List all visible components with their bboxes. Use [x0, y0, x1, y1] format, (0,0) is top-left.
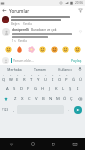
button[interactable]: Geri — [0, 6, 9, 15]
button[interactable]: Ş — [67, 84, 74, 94]
button[interactable]: C — [26, 94, 33, 104]
staticText: Kullanıcı — [58, 67, 72, 72]
staticText: Q — [2, 77, 6, 83]
button[interactable]: F — [25, 84, 32, 94]
button[interactable]: L — [60, 84, 67, 94]
button[interactable]: 1 — [1, 73, 7, 84]
button[interactable]: Paylaş — [70, 57, 83, 64]
button[interactable]: Sesle yaz — [77, 65, 83, 73]
button[interactable]: G — [32, 84, 39, 94]
button[interactable]: Kullanıcı — [52, 65, 77, 73]
staticText: V — [35, 96, 38, 102]
button[interactable]: 8 — [49, 73, 56, 84]
button[interactable]: Geri — [0, 138, 22, 150]
button[interactable]: Ö — [61, 94, 68, 104]
button[interactable]: Emoji 2 — [27, 45, 36, 54]
button[interactable]: H — [39, 84, 46, 94]
button[interactable]: Ğ — [70, 73, 77, 84]
button[interactable]: Gönder — [71, 105, 84, 114]
button[interactable]: Son uygulamalar — [43, 138, 64, 150]
staticText: 8 — [52, 74, 54, 77]
staticText: 9 — [59, 74, 61, 77]
staticText: O — [58, 77, 62, 83]
button[interactable]: B — [40, 94, 47, 104]
staticText: 4 — [24, 74, 26, 77]
button[interactable]: Emoji 3 — [38, 45, 47, 54]
button[interactable]: Ç — [68, 94, 75, 104]
staticText: 6 — [38, 74, 40, 77]
button[interactable]: Merhaba — [2, 65, 27, 73]
staticText: . — [68, 107, 69, 112]
button[interactable]: Shift — [1, 94, 11, 104]
button[interactable]: Virgül — [10, 105, 16, 114]
button[interactable]: Filtrele — [76, 6, 85, 15]
button[interactable]: Beğen — [0, 15, 85, 27]
staticText: Yanıtla — [18, 39, 27, 43]
button[interactable]: Emoji 1 — [15, 45, 24, 54]
staticText: Z — [14, 96, 17, 102]
button[interactable]: Klavyeyi kapat — [64, 138, 85, 150]
button[interactable]: 3 — [14, 73, 21, 84]
button[interactable]: Emoji 4 — [50, 45, 59, 54]
staticText: Ü — [79, 77, 83, 83]
button[interactable]: 0 — [63, 73, 70, 84]
staticText: Paylaş — [71, 58, 82, 63]
staticText: H — [41, 86, 45, 92]
staticText: 20:56 — [75, 1, 84, 5]
staticText: Ş — [69, 86, 72, 92]
staticText: G — [34, 86, 38, 92]
staticText: Ğ — [72, 77, 76, 83]
staticText: R — [23, 77, 26, 83]
button[interactable]: S — [11, 84, 18, 94]
button[interactable]: Sil — [75, 94, 84, 104]
button[interactable]: V — [33, 94, 40, 104]
staticText: D — [20, 86, 24, 92]
staticText: M — [56, 96, 60, 102]
button[interactable]: Emoji 5 — [61, 45, 70, 54]
staticText: K — [55, 86, 58, 92]
button[interactable]: Z — [11, 94, 19, 104]
staticText: Ö — [63, 96, 67, 102]
staticText: P — [65, 77, 68, 83]
button[interactable]: Emoji 0 — [4, 45, 13, 54]
button[interactable]: 9 — [56, 73, 63, 84]
staticText: B — [42, 96, 45, 102]
staticText: dostperelli — [12, 28, 30, 32]
staticText: ?123 — [2, 108, 9, 112]
staticText: Y — [37, 77, 40, 83]
button[interactable]: J — [46, 84, 53, 94]
button[interactable]: 7 — [42, 73, 49, 84]
button[interactable]: 2 — [7, 73, 14, 84]
button[interactable]: Beğen — [77, 28, 83, 34]
staticText: Yorum ekle... — [13, 58, 34, 63]
staticText: J — [49, 86, 51, 92]
button[interactable]: Ana ekran — [22, 138, 43, 150]
button[interactable]: 6 — [35, 73, 42, 84]
button[interactable]: X — [19, 94, 26, 104]
button[interactable]: 5 — [28, 73, 35, 84]
staticText: F — [27, 86, 30, 92]
staticText: 7 — [45, 74, 47, 77]
button[interactable]: D — [18, 84, 25, 94]
button[interactable]: M — [54, 94, 61, 104]
button[interactable]: Ü — [77, 73, 84, 84]
staticText: Buradasın ve çok — [31, 28, 57, 32]
button[interactable]: 4 — [21, 73, 28, 84]
button[interactable]: N — [47, 94, 54, 104]
staticText: W — [9, 77, 13, 83]
button[interactable]: dostperelli — [0, 27, 85, 44]
button[interactable]: Tamam — [27, 65, 52, 73]
button[interactable]: I — [74, 84, 81, 94]
button[interactable]: A — [4, 84, 11, 94]
staticText: S — [13, 86, 16, 92]
staticText: L — [62, 86, 65, 92]
staticText: 5 — [31, 74, 33, 77]
button[interactable]: ?123 — [1, 105, 10, 114]
button[interactable]: Emoji 6 — [73, 45, 82, 54]
button[interactable]: K — [53, 84, 60, 94]
button[interactable]: Nokta — [65, 105, 71, 114]
staticText: A — [6, 86, 9, 92]
staticText: Beğen — [11, 22, 20, 26]
staticText: Tamam — [34, 67, 46, 72]
